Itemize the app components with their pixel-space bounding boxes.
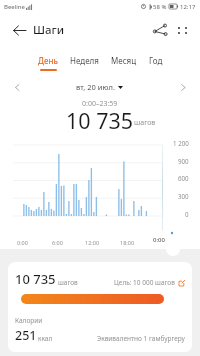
staticText: вт, 20 июл. [76, 82, 115, 92]
staticText: 18:00 [120, 239, 135, 246]
staticText: Месяц [111, 55, 137, 66]
staticText: Шаги [33, 22, 65, 38]
button[interactable]: More options [170, 18, 194, 42]
button[interactable]: Год [149, 55, 163, 71]
staticText: ккал [38, 334, 53, 343]
staticText: 1 200 [173, 139, 189, 147]
staticText: Beeline [4, 3, 25, 11]
button[interactable]: вт, 20 июл. [76, 82, 123, 92]
staticText: 10 735 [15, 270, 56, 288]
staticText: 600 [178, 174, 189, 182]
button[interactable]: Share [148, 18, 172, 42]
staticText: День [38, 55, 58, 66]
staticText: 58 % [153, 3, 167, 11]
staticText: 0 [185, 210, 189, 218]
staticText: Неделя [70, 55, 99, 66]
staticText: Год [149, 55, 163, 66]
staticText: Эквивалентно 1 гамбургеру [97, 334, 185, 343]
staticText: Цель: 10 000 шагов [114, 278, 175, 287]
staticText: 10 735 [66, 106, 134, 135]
button[interactable]: Previous day [10, 80, 24, 94]
staticText: 251 [15, 327, 37, 344]
staticText: 0:00 [153, 236, 165, 244]
staticText: шагов [58, 278, 78, 287]
staticText: 900 [178, 157, 189, 165]
staticText: 12:17 [180, 3, 196, 11]
staticText: Калории [15, 316, 43, 325]
staticText: 300 [178, 192, 189, 200]
button[interactable]: Цель: 10 000 шагов [114, 278, 185, 288]
button[interactable]: Next day [176, 80, 190, 94]
button[interactable]: Неделя [70, 55, 99, 71]
staticText: 6:00 [52, 239, 63, 246]
button[interactable]: Back [8, 19, 30, 41]
staticText: шагов [134, 118, 156, 128]
staticText: 0:00 [17, 239, 28, 246]
button[interactable]: День [38, 55, 58, 71]
button[interactable]: Месяц [111, 55, 137, 71]
staticText: 12:00 [85, 239, 100, 246]
staticText: 0:00–23:59 [82, 99, 118, 109]
